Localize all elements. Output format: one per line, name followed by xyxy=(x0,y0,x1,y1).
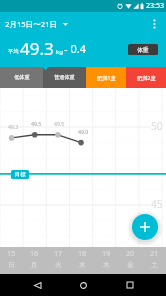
staticText: 49.0 xyxy=(78,128,89,135)
staticText: 肥満2度 xyxy=(137,74,156,81)
staticText: 16 xyxy=(30,248,39,258)
staticText: 体重 xyxy=(137,46,149,53)
button[interactable]: Back xyxy=(27,275,47,295)
staticText: 15 xyxy=(7,248,16,258)
staticText: 普通体重 xyxy=(54,74,75,81)
staticText: 平均 xyxy=(8,48,19,55)
staticText: 49.5 xyxy=(54,120,65,127)
staticText: 49.3 xyxy=(8,123,19,130)
staticText: 23:53 xyxy=(146,1,164,11)
staticText: 2月15日〜21日 xyxy=(5,19,58,29)
button[interactable]: 目標 xyxy=(11,170,29,179)
button[interactable]: 体重 xyxy=(128,44,158,55)
button[interactable]: Recent apps xyxy=(120,275,140,295)
staticText: 19 xyxy=(102,248,111,258)
button[interactable]: Add record xyxy=(132,214,158,240)
staticText: 土 xyxy=(151,260,158,269)
button[interactable]: 16 xyxy=(23,247,46,270)
button[interactable]: 肥満1度 xyxy=(86,67,126,88)
button[interactable]: 肥満2度 xyxy=(126,67,166,88)
staticText: 17 xyxy=(54,248,63,258)
button[interactable]: 15 xyxy=(0,247,23,270)
staticText: 月 xyxy=(31,260,38,269)
staticText: 火 xyxy=(55,260,62,269)
button[interactable]: More options xyxy=(145,15,163,33)
button[interactable]: 18 xyxy=(70,247,94,270)
button[interactable]: Home xyxy=(73,275,93,295)
staticText: kg xyxy=(56,48,63,56)
staticText: 21 xyxy=(150,248,159,258)
staticText: 水 xyxy=(79,260,86,269)
button[interactable]: 17 xyxy=(46,247,70,270)
staticText: 金 xyxy=(127,260,134,269)
staticText: - 0.4 xyxy=(64,41,86,56)
staticText: 木 xyxy=(103,260,110,269)
staticText: 45 xyxy=(151,197,163,211)
staticText: 低体重 xyxy=(14,74,30,81)
staticText: 50 xyxy=(151,119,163,133)
staticText: 49.3 xyxy=(20,37,54,60)
button[interactable]: 低体重 xyxy=(0,67,43,88)
staticText: 目標 xyxy=(15,171,26,178)
staticText: 肥満1度 xyxy=(97,74,116,81)
button[interactable]: 21 xyxy=(142,247,166,270)
staticText: 20 xyxy=(126,248,135,258)
staticText: 49.5 xyxy=(31,120,42,127)
button[interactable]: 19 xyxy=(94,247,118,270)
button[interactable]: 20 xyxy=(118,247,142,270)
staticText: 18 xyxy=(78,248,87,258)
staticText: 日 xyxy=(8,260,15,269)
button[interactable]: 普通体重 xyxy=(43,67,86,88)
button[interactable]: 2月15日〜21日 xyxy=(4,16,69,32)
